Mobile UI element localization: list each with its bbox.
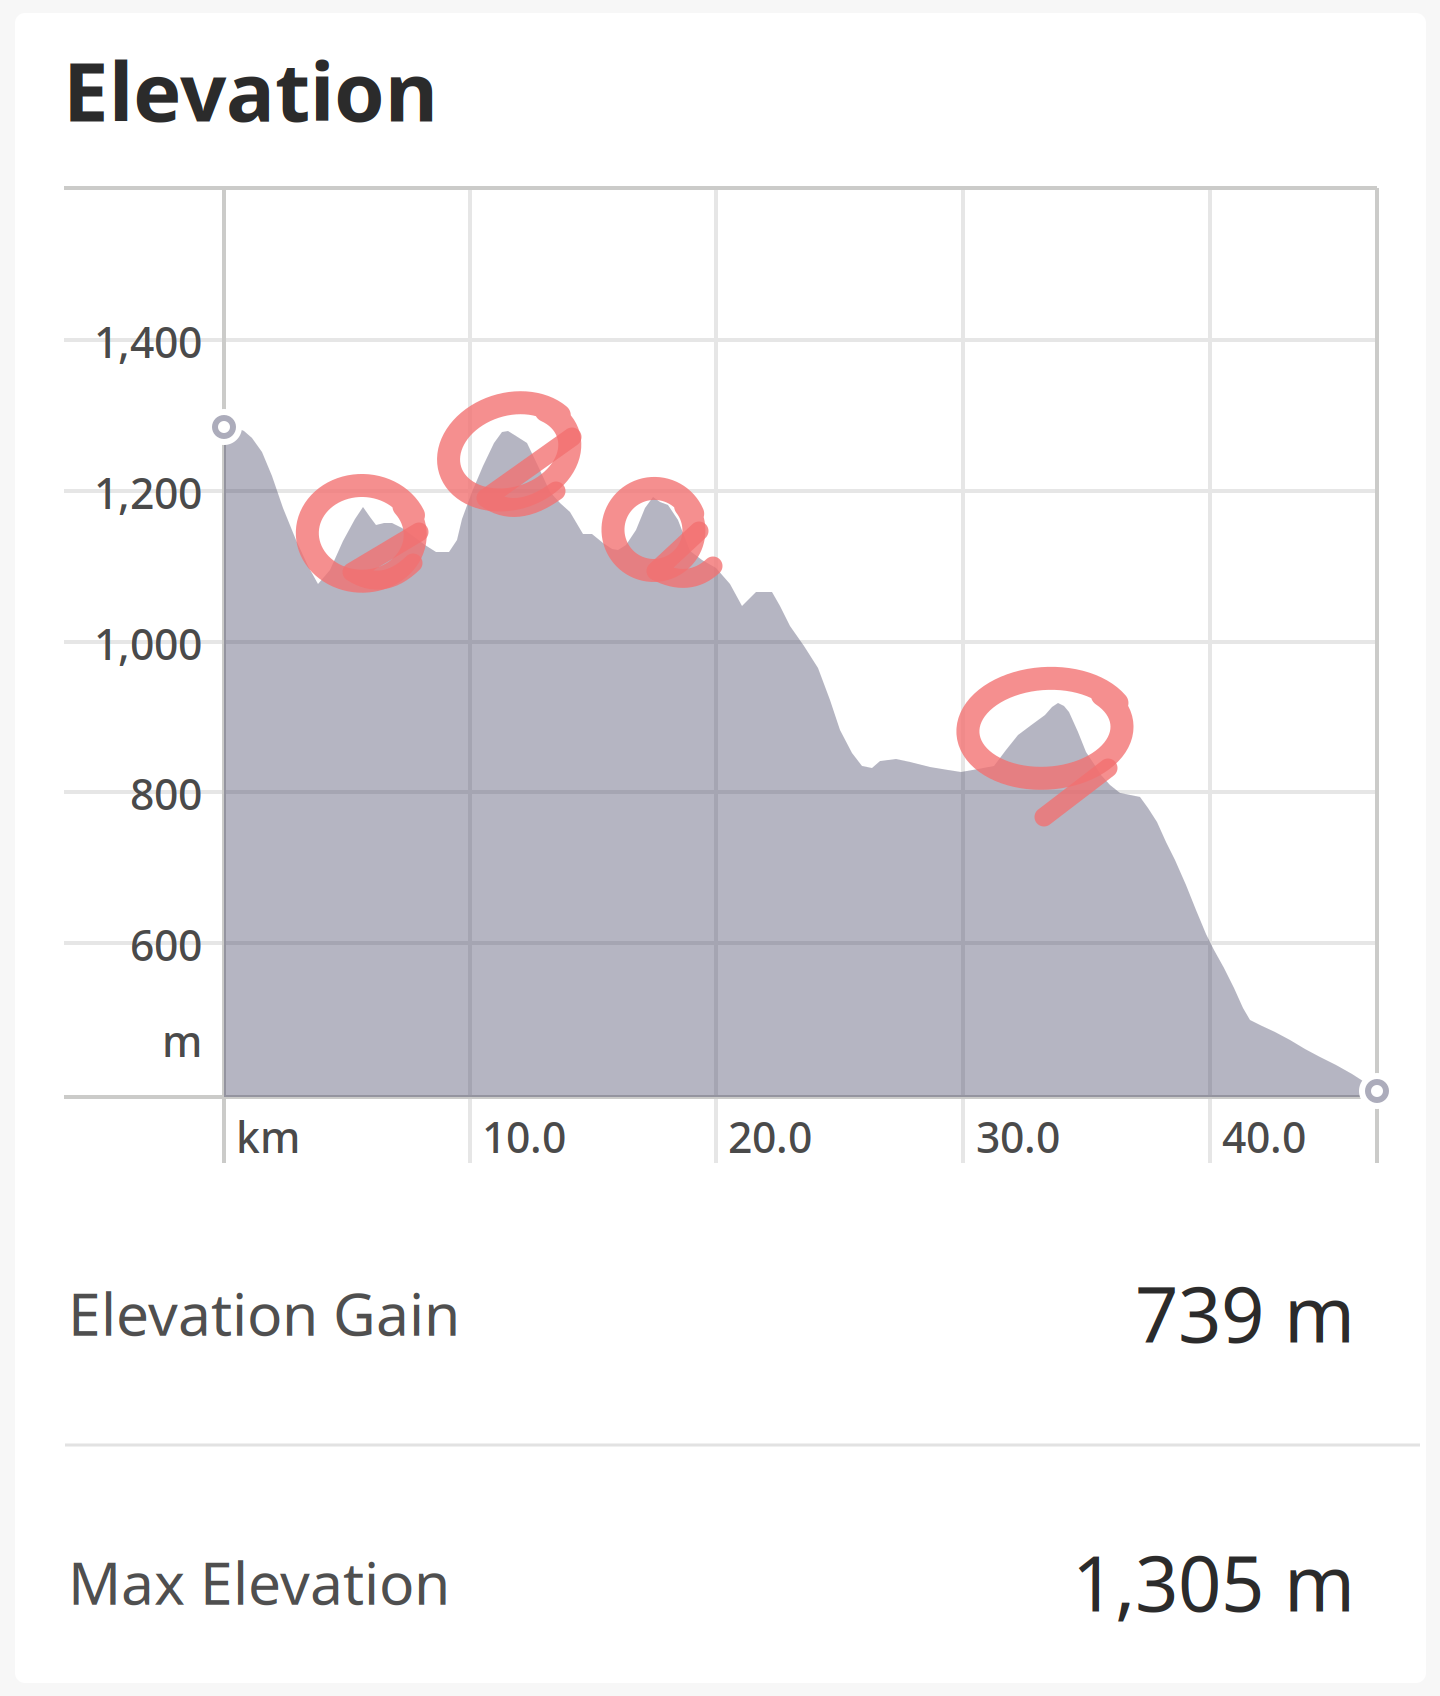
staticText: 1,305 m	[1072, 1531, 1355, 1632]
staticText: 1,000	[94, 615, 202, 672]
staticText: 1,200	[94, 464, 202, 521]
staticText: m	[162, 1012, 202, 1069]
staticText: Elevation Gain	[68, 1274, 460, 1352]
staticText: Elevation	[63, 36, 438, 144]
button[interactable]: Max Elevation	[68, 1489, 1355, 1675]
staticText: 800	[130, 765, 202, 822]
staticText: 600	[130, 916, 202, 973]
staticText: 739 m	[1135, 1262, 1355, 1363]
staticText: 30.0	[976, 1108, 1060, 1165]
staticText: km	[236, 1108, 300, 1165]
button[interactable]: Elevation Gain	[68, 1220, 1355, 1406]
staticText: 20.0	[728, 1108, 812, 1165]
staticText: 40.0	[1222, 1108, 1306, 1165]
staticText: 10.0	[482, 1108, 566, 1165]
staticText: 1,400	[94, 313, 202, 370]
staticText: Max Elevation	[68, 1543, 450, 1621]
